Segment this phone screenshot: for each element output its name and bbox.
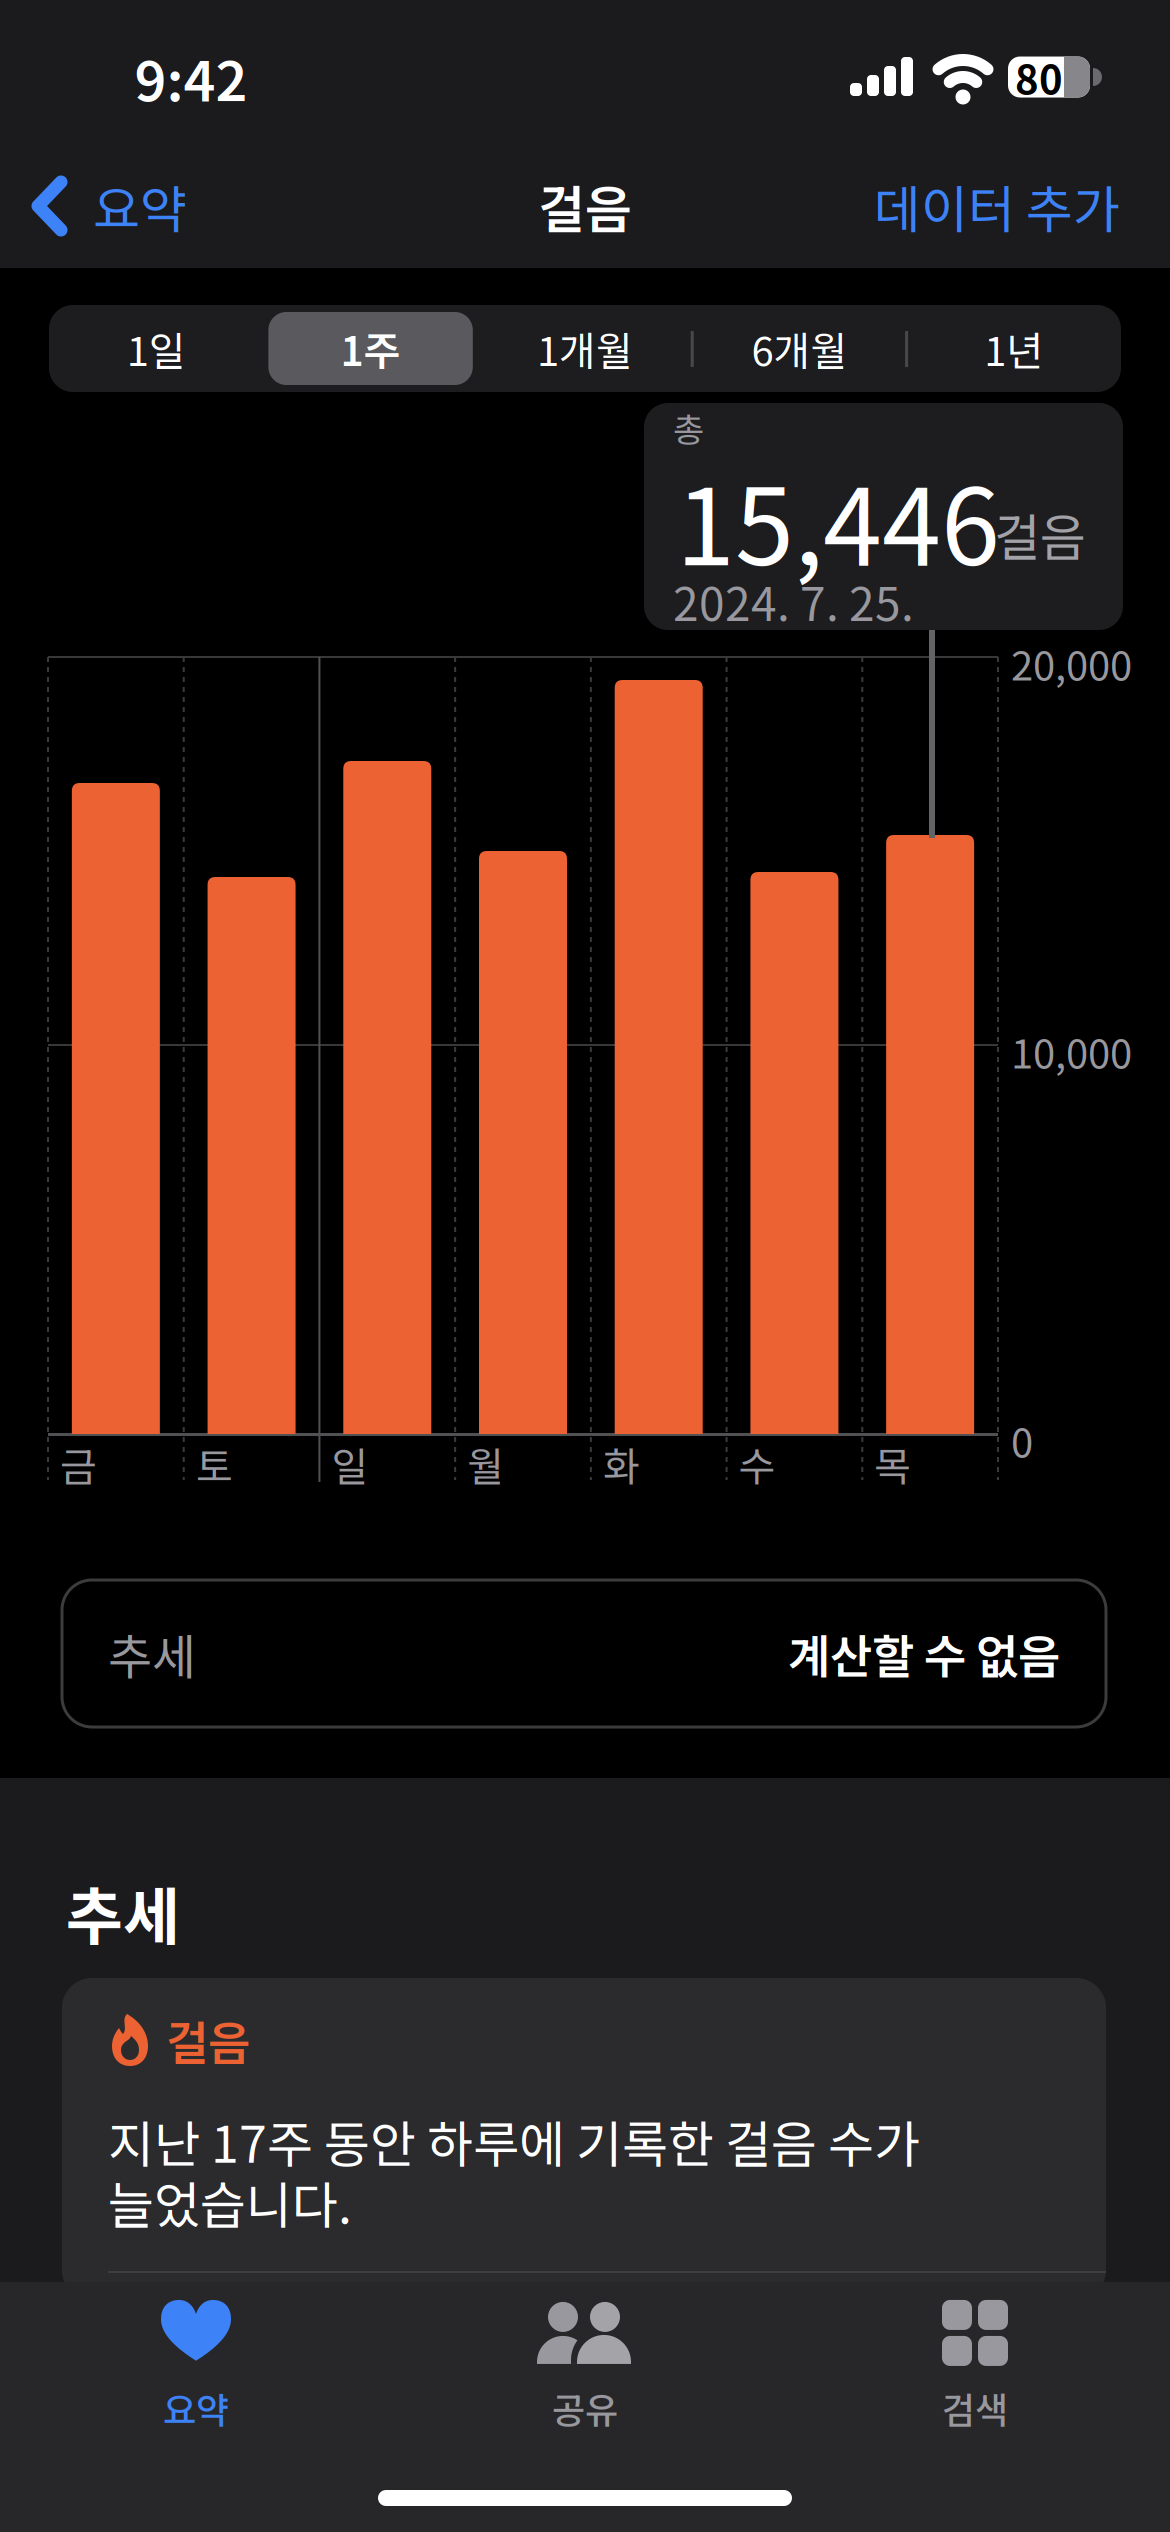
button[interactable]: 뒤로 (31, 169, 187, 243)
staticText: 걸음 (166, 2007, 250, 2073)
staticText: 20,000 (1011, 634, 1132, 692)
button[interactable]: 1개월 (478, 305, 692, 392)
button[interactable]: 추세 (62, 1580, 1106, 1727)
staticText: 1주 (341, 319, 401, 377)
staticText: 요약 (93, 169, 187, 243)
staticText: 6개월 (751, 319, 847, 377)
button[interactable]: 요약 (76, 2292, 316, 2442)
staticText: 계산할 수 없음 (788, 1620, 1060, 1687)
button[interactable]: 공유 (465, 2292, 705, 2442)
staticText: 15,446 (676, 442, 1000, 596)
staticText: 1일 (127, 319, 186, 377)
button[interactable]: 데이터 추가 (874, 169, 1120, 243)
staticText: 1개월 (537, 319, 633, 377)
staticText: 수 (739, 1435, 776, 1493)
staticText: 공유 (552, 2382, 618, 2434)
staticText: 10,000 (1011, 1022, 1132, 1080)
staticText: 늘었습니다. (108, 2166, 352, 2238)
staticText: 토 (196, 1435, 233, 1493)
button[interactable]: 1주 (263, 305, 478, 392)
staticText: 데이터 추가 (874, 169, 1120, 243)
staticText: 일 (331, 1435, 368, 1493)
staticText: 지난 17주 동안 하루에 기록한 걸음 수가 (108, 2105, 920, 2177)
staticText: 1년 (984, 319, 1043, 377)
staticText: 0 (1011, 1411, 1033, 1469)
staticText: 걸음 (538, 169, 632, 243)
staticText: 목 (874, 1435, 911, 1493)
button[interactable]: 걸음 (62, 1978, 1106, 2300)
staticText: 추세 (66, 1867, 180, 1957)
staticText: 금 (60, 1435, 97, 1493)
staticText: 검색 (942, 2382, 1008, 2434)
button[interactable]: 검색 (855, 2292, 1095, 2442)
staticText: 총 (673, 403, 704, 453)
staticText: 9:42 (134, 37, 247, 117)
staticText: 추세 (108, 1619, 196, 1688)
staticText: 화 (603, 1435, 640, 1493)
staticText: 요약 (163, 2382, 229, 2434)
staticText: 80 (1015, 48, 1063, 106)
staticText: 2024. 7. 25. (673, 568, 914, 634)
staticText: 월 (467, 1435, 504, 1493)
button[interactable]: 1일 (49, 305, 263, 392)
staticText: 걸음 (994, 498, 1086, 570)
button[interactable]: 6개월 (692, 305, 907, 392)
button[interactable]: 1년 (907, 305, 1121, 392)
